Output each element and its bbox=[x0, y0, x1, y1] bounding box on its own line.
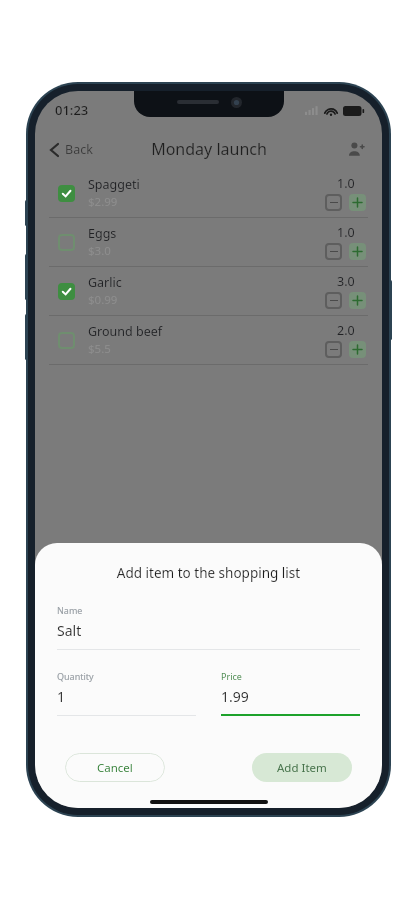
staticText: 1 bbox=[57, 687, 66, 706]
button[interactable]: Decrease Spaggeti bbox=[325, 194, 342, 211]
staticText: Quantity bbox=[57, 670, 94, 682]
button[interactable]: Increase Spaggeti bbox=[349, 194, 366, 211]
staticText: 1.99 bbox=[221, 687, 249, 706]
button[interactable]: Toggle Garlic bbox=[51, 276, 81, 306]
staticText: 3.0 bbox=[337, 273, 355, 290]
button[interactable]: Toggle Garlic bbox=[35, 267, 382, 315]
button[interactable]: Back bbox=[35, 135, 103, 164]
staticText: 2.0 bbox=[337, 322, 355, 339]
button[interactable]: Toggle Ground beef bbox=[35, 316, 382, 364]
staticText: Add Item bbox=[277, 760, 327, 776]
button[interactable]: Price bbox=[221, 670, 360, 716]
button[interactable]: Toggle Spaggeti bbox=[35, 169, 382, 217]
button[interactable]: Toggle Eggs bbox=[35, 218, 382, 266]
button[interactable]: Toggle Eggs bbox=[51, 227, 81, 257]
button[interactable]: Decrease Eggs bbox=[325, 243, 342, 260]
staticText: Garlic bbox=[88, 274, 122, 291]
staticText: $2.99 bbox=[88, 194, 118, 210]
button[interactable]: Add Item bbox=[252, 753, 352, 782]
staticText: Back bbox=[65, 141, 93, 158]
staticText: Cancel bbox=[97, 760, 133, 776]
button[interactable]: Cancel bbox=[65, 753, 165, 782]
staticText: $0.99 bbox=[88, 292, 118, 308]
staticText: 1.0 bbox=[337, 175, 355, 192]
button[interactable]: Increase Garlic bbox=[349, 292, 366, 309]
button[interactable]: Increase Ground beef bbox=[349, 341, 366, 358]
staticText: Name bbox=[57, 604, 83, 616]
staticText: 1.0 bbox=[337, 224, 355, 241]
staticText: $3.0 bbox=[88, 243, 111, 259]
staticText: Price bbox=[221, 670, 242, 682]
button[interactable]: Decrease Garlic bbox=[325, 292, 342, 309]
button[interactable]: Add person bbox=[342, 135, 370, 163]
staticText: Eggs bbox=[88, 225, 117, 242]
button[interactable]: Quantity bbox=[57, 670, 196, 716]
staticText: Ground beef bbox=[88, 323, 163, 340]
button[interactable]: Toggle Spaggeti bbox=[51, 178, 81, 208]
button[interactable]: Toggle Ground beef bbox=[51, 325, 81, 355]
staticText: 01:23 bbox=[55, 101, 89, 119]
staticText: Salt bbox=[57, 621, 82, 640]
button[interactable]: Name bbox=[57, 604, 360, 650]
button[interactable]: Increase Eggs bbox=[349, 243, 366, 260]
staticText: Spaggeti bbox=[88, 176, 140, 193]
staticText: Monday launch bbox=[151, 138, 267, 160]
staticText: $5.5 bbox=[88, 341, 111, 357]
button[interactable]: Decrease Ground beef bbox=[325, 341, 342, 358]
staticText: Add item to the shopping list bbox=[57, 564, 360, 582]
